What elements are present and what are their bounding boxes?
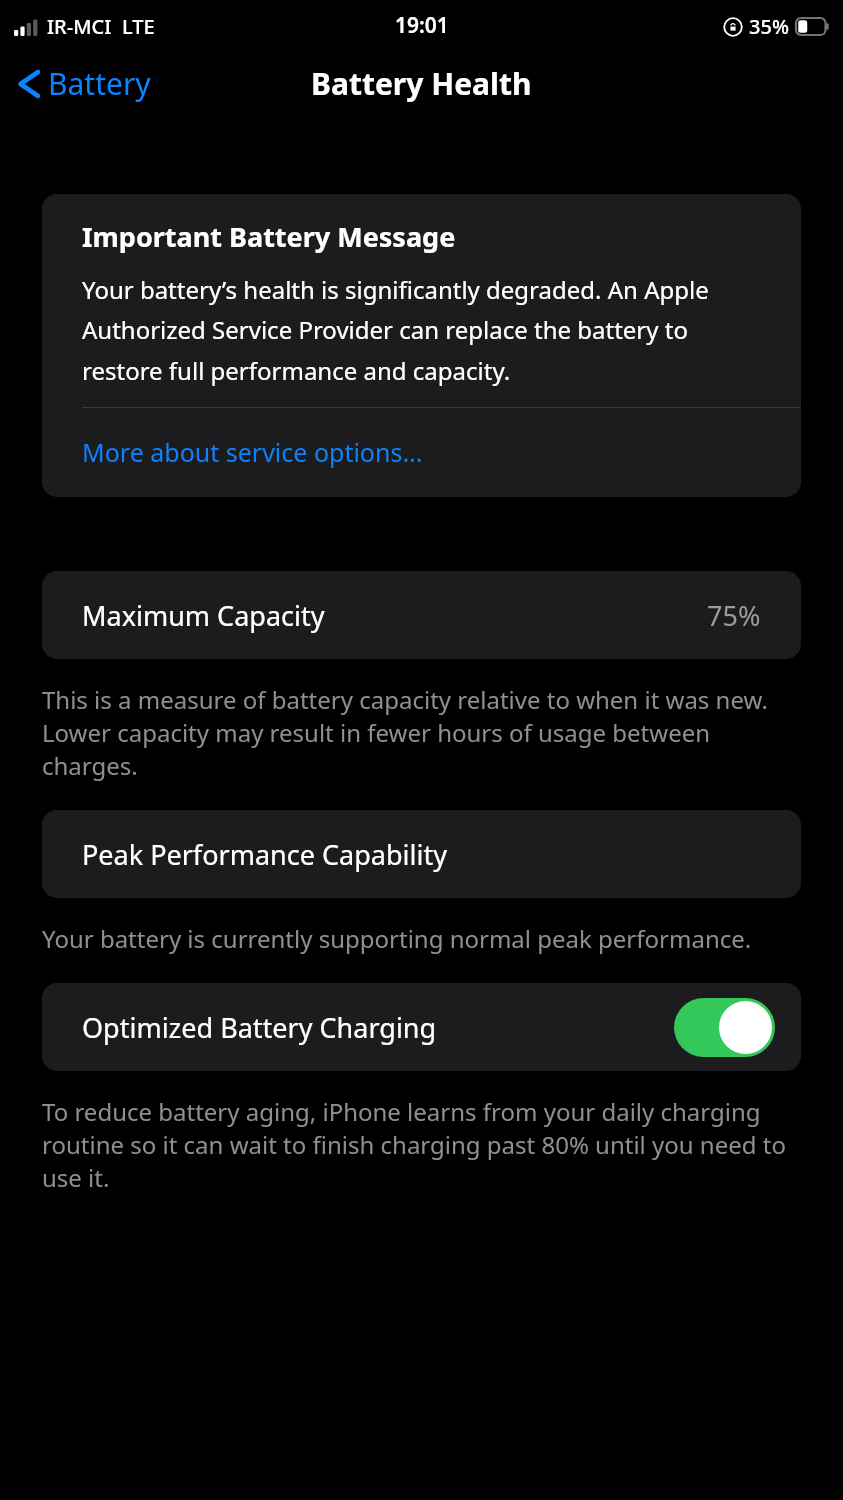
staticText: Important Battery Message — [82, 218, 456, 255]
button[interactable]: More about service options... — [42, 408, 801, 497]
staticText: 35% — [749, 13, 789, 40]
button[interactable]: Peak Performance Capability — [42, 810, 801, 898]
staticText: Battery — [48, 63, 151, 104]
staticText: IR-MCI — [47, 13, 112, 40]
staticText: Your battery is currently supporting nor… — [42, 922, 752, 955]
staticText: Peak Performance Capability — [82, 836, 447, 873]
staticText: Your battery’s health is significantly d… — [82, 273, 771, 387]
button[interactable]: Battery — [0, 57, 163, 110]
staticText: Optimized Battery Charging — [82, 1009, 437, 1046]
staticText: Battery Health — [311, 63, 532, 104]
staticText: Maximum Capacity — [82, 597, 325, 634]
staticText: 75% — [707, 597, 761, 634]
staticText: 19:01 — [395, 11, 449, 40]
staticText: LTE — [122, 13, 155, 40]
button[interactable]: Optimized Battery Charging toggle, on — [674, 998, 775, 1057]
button[interactable]: Maximum Capacity — [42, 571, 801, 659]
staticText: This is a measure of battery capacity re… — [42, 683, 797, 782]
staticText: To reduce battery aging, iPhone learns f… — [42, 1095, 797, 1194]
staticText: More about service options... — [82, 435, 423, 469]
